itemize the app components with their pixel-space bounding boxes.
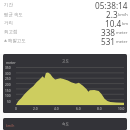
button[interactable]: 평균 속도 (4, 9, 128, 18)
staticText: 50 (7, 100, 11, 104)
staticText: 6.0 (76, 107, 81, 111)
staticText: km (122, 21, 128, 26)
staticText: 350 (5, 66, 11, 70)
staticText: 2.0 (33, 107, 38, 111)
staticText: 8.0 (97, 107, 102, 111)
staticText: 최고점 (4, 29, 18, 35)
staticText: 2.3 (106, 9, 118, 18)
staticText: meter (116, 39, 128, 44)
staticText: km/h (118, 12, 128, 17)
button[interactable]: 기간 (4, 0, 128, 9)
staticText: 250 (5, 77, 11, 81)
staticText: 150 (5, 89, 11, 93)
staticText: 338 (101, 27, 116, 36)
staticText: 기간 (4, 2, 13, 8)
staticText: meter (6, 60, 16, 65)
staticText: 300 (5, 72, 11, 76)
staticText: 05:38:14 (95, 0, 128, 9)
staticText: 거리 (4, 20, 13, 26)
staticText: 100 (5, 94, 11, 98)
staticText: 531 (101, 36, 116, 45)
staticText: meter (116, 30, 128, 35)
staticText: km/h (6, 123, 15, 128)
staticText: 평균 속도 (4, 11, 23, 17)
staticText: 4.0 (54, 107, 59, 111)
staticText: 10.4 (105, 18, 122, 27)
button[interactable]: 해발고도 (4, 36, 128, 45)
staticText: 0 (15, 107, 17, 111)
staticText: 고도 (62, 59, 69, 63)
staticText: 해발고도 (8, 38, 26, 44)
staticText: 10.0 (118, 107, 125, 111)
staticText: 속도 (62, 122, 69, 126)
staticText: 200 (5, 83, 11, 87)
button[interactable]: 거리 (4, 18, 128, 27)
button[interactable]: 최고점 (4, 27, 128, 36)
